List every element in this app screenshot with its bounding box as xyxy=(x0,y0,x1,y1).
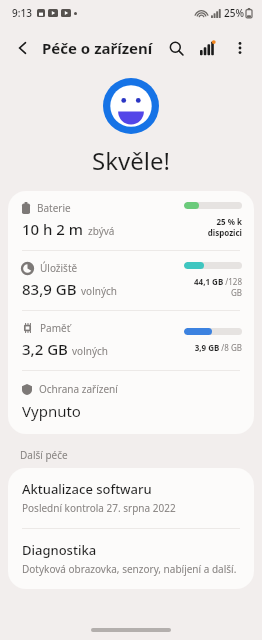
button[interactable]: Paměť xyxy=(8,311,254,370)
staticText: Péče o zařízení xyxy=(42,38,153,58)
staticText: Diagnostika xyxy=(22,541,97,559)
staticText: 10 h 2 m xyxy=(22,219,84,239)
staticText: Paměť xyxy=(40,321,71,335)
button[interactable]: Baterie xyxy=(8,191,254,250)
staticText: Úložiště xyxy=(40,261,78,275)
button[interactable]: Další možnosti xyxy=(224,32,256,64)
staticText: 3,9 GB /8 GB xyxy=(194,342,242,353)
staticText: 3,2 GB xyxy=(22,339,68,359)
button[interactable]: Zpět xyxy=(6,31,40,65)
staticText: volných xyxy=(72,344,108,358)
staticText: Dotyková obrazovka, senzory, nabíjení a … xyxy=(22,562,237,576)
button[interactable]: Hledat xyxy=(160,32,192,64)
staticText: 25% xyxy=(224,6,244,20)
staticText: Vypnuto xyxy=(22,401,81,421)
staticText: Baterie xyxy=(37,201,71,215)
staticText: Ochrana zařízení xyxy=(39,382,118,396)
button[interactable]: Úložiště xyxy=(8,251,254,310)
staticText: 44,1 GB /128 GB xyxy=(184,276,242,298)
button[interactable]: Ochrana zařízení xyxy=(8,371,254,434)
staticText: volných xyxy=(81,284,117,298)
staticText: 83,9 GB xyxy=(22,279,77,299)
button[interactable]: Statistiky xyxy=(192,32,224,64)
button[interactable]: Diagnostika xyxy=(8,529,254,589)
staticText: 9:13 xyxy=(12,6,32,20)
staticText: Poslední kontrola 27. srpna 2022 xyxy=(22,501,176,515)
button[interactable]: Aktualizace softwaru xyxy=(8,468,254,528)
staticText: 25 % k dispozici xyxy=(184,216,242,238)
staticText: zbývá xyxy=(88,224,115,238)
staticText: Aktualizace softwaru xyxy=(22,480,152,498)
staticText: Další péče xyxy=(20,448,68,462)
staticText: Skvěle! xyxy=(92,144,170,177)
